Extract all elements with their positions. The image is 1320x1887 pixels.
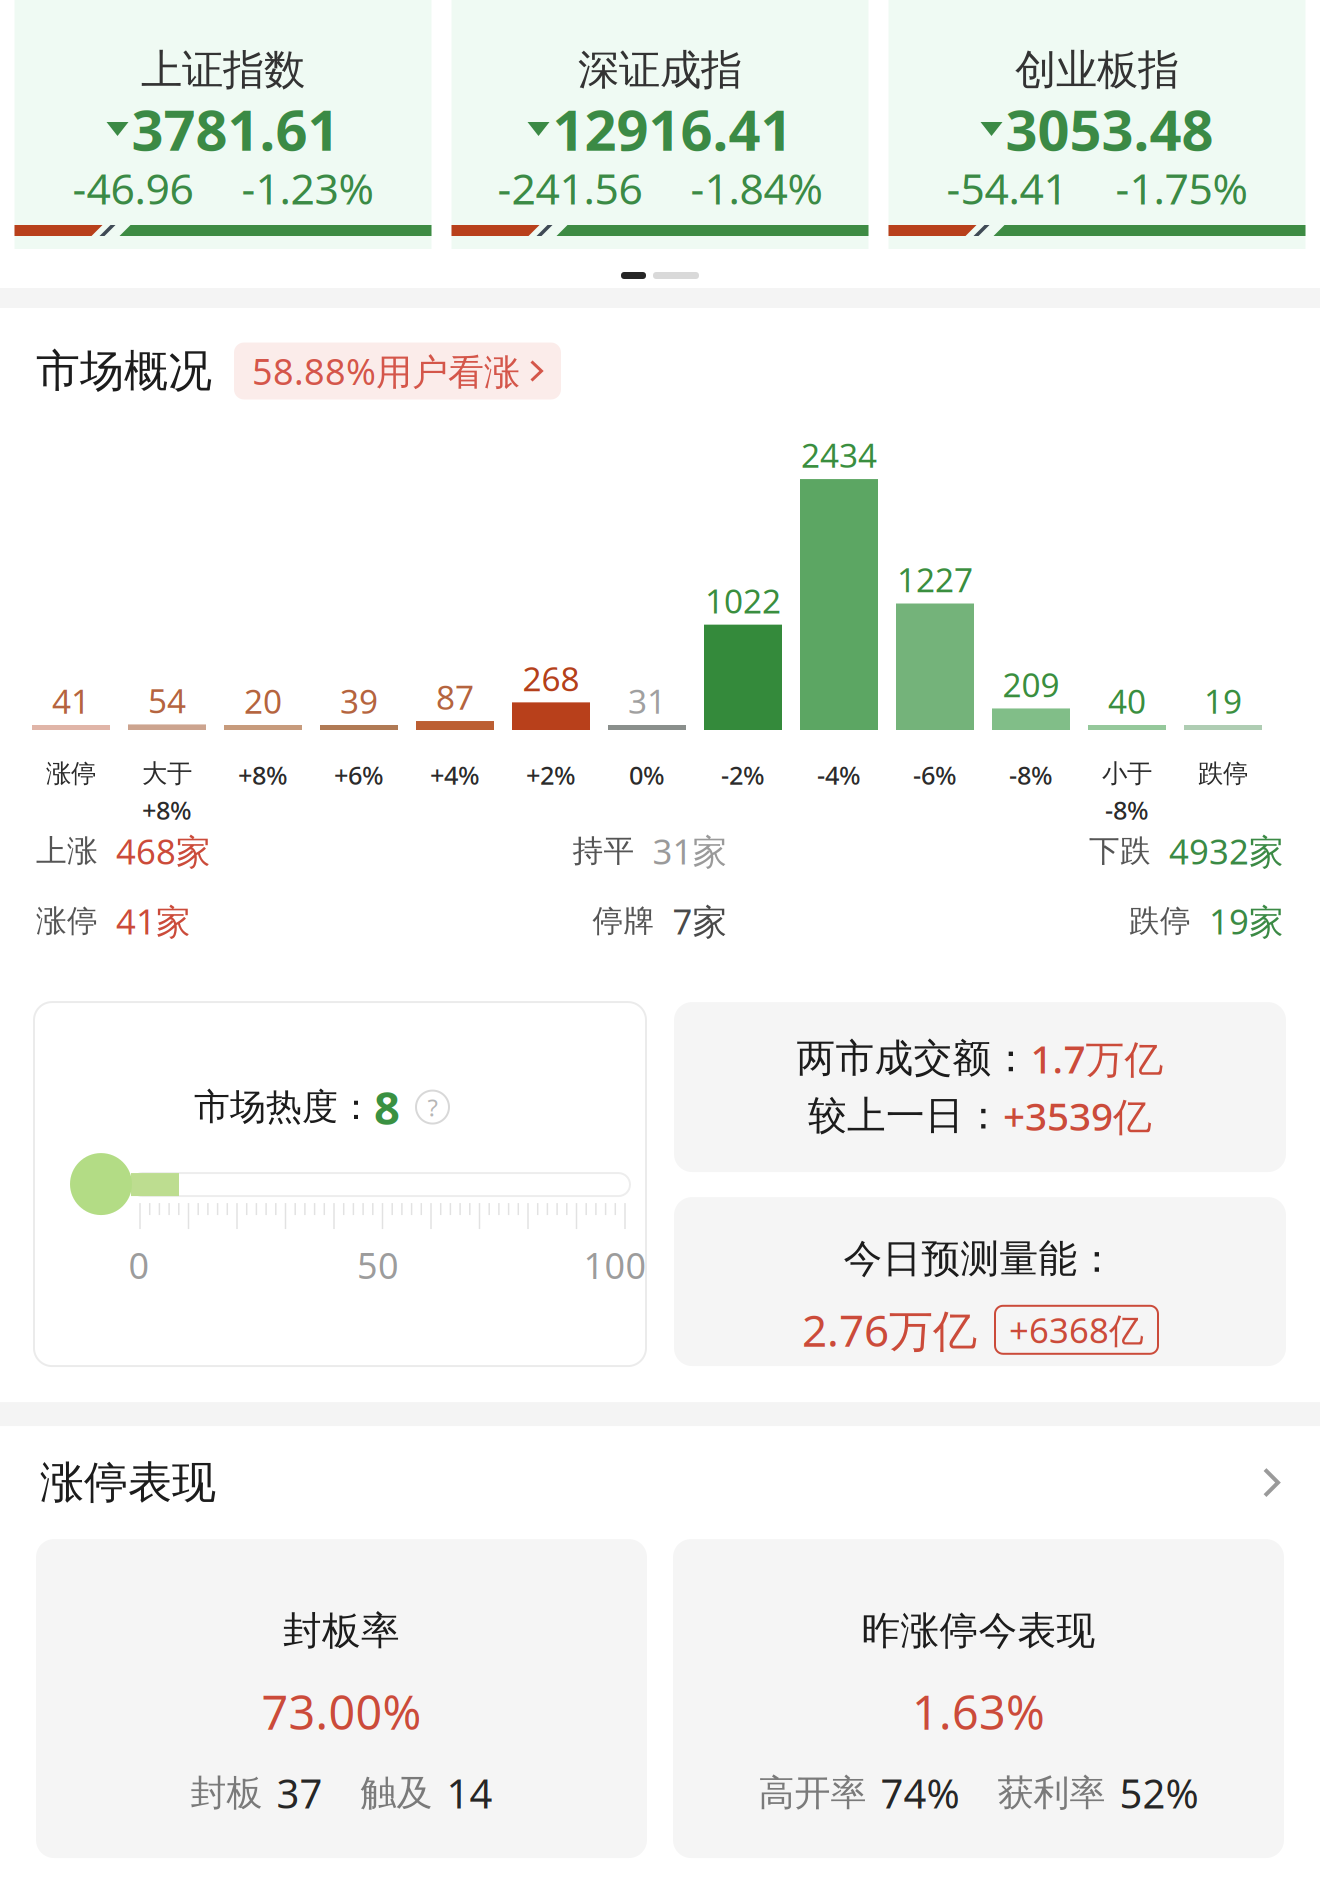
staticText: +6368亿 xyxy=(1009,1307,1144,1353)
staticText: -1.84% xyxy=(690,160,822,216)
staticText: 20 xyxy=(244,679,282,723)
staticText: 73.00% xyxy=(261,1681,421,1743)
staticText: 下跌 xyxy=(1089,832,1151,870)
staticText: 1.63% xyxy=(912,1681,1045,1743)
staticText: 触及 xyxy=(360,1771,432,1815)
staticText: 今日预测量能： xyxy=(843,1235,1116,1283)
staticText: 100 xyxy=(583,1241,646,1289)
staticText: 41 xyxy=(52,679,90,723)
button[interactable]: 涨停表现 xyxy=(0,1426,1320,1539)
staticText: +4% xyxy=(430,758,480,792)
staticText: +3539亿 xyxy=(1003,1090,1152,1141)
staticText: 创业板指 xyxy=(1015,45,1179,95)
staticText: 昨涨停今表现 xyxy=(861,1607,1095,1655)
staticText: 封板 xyxy=(190,1771,262,1815)
staticText: 268 xyxy=(522,656,579,700)
staticText: 3053.48 xyxy=(1005,92,1213,166)
staticText: 3781.61 xyxy=(131,92,339,166)
staticText: 涨停表现 xyxy=(40,1456,216,1510)
staticText: 39 xyxy=(340,679,378,723)
staticText: 封板率 xyxy=(283,1607,400,1655)
staticText: 41家 xyxy=(116,898,191,944)
staticText: 19 xyxy=(1204,679,1242,723)
staticText: -46.96 xyxy=(72,160,193,216)
staticText: -1.23% xyxy=(241,160,373,216)
staticText: 高开率 xyxy=(758,1771,866,1815)
staticText: 跌停 xyxy=(1198,758,1248,789)
staticText: 大于 xyxy=(142,758,192,789)
staticText: 58.88%用户看涨 xyxy=(252,347,520,395)
staticText: +2% xyxy=(526,758,576,792)
staticText: 涨停 xyxy=(46,758,96,789)
staticText: 上涨 xyxy=(36,832,98,870)
staticText: 1022 xyxy=(705,578,781,623)
staticText: 持平 xyxy=(572,832,634,870)
staticText: 209 xyxy=(1002,662,1059,706)
staticText: 0% xyxy=(629,758,665,792)
staticText: 31 xyxy=(628,679,666,723)
button[interactable]: 创业板指 xyxy=(888,0,1305,249)
staticText: 市场热度： xyxy=(194,1085,374,1129)
staticText: 40 xyxy=(1108,679,1146,723)
staticText: 74% xyxy=(880,1766,959,1820)
staticText: 7家 xyxy=(672,898,727,944)
staticText: 0 xyxy=(128,1241,149,1289)
staticText: 468家 xyxy=(116,828,211,874)
staticText: 市场概况 xyxy=(36,344,212,398)
staticText: +8% xyxy=(142,793,192,827)
staticText: 14 xyxy=(446,1766,492,1820)
button[interactable]: 58.88%用户看涨 xyxy=(234,342,561,399)
staticText: 获利率 xyxy=(997,1771,1105,1815)
staticText: -4% xyxy=(817,758,861,792)
staticText: -6% xyxy=(913,758,957,792)
staticText: 54 xyxy=(148,678,186,722)
staticText: -8% xyxy=(1009,758,1053,792)
staticText: 52% xyxy=(1119,1766,1198,1820)
staticText: 2.76万亿 xyxy=(802,1301,977,1359)
staticText: -54.41 xyxy=(946,160,1067,216)
staticText: 停牌 xyxy=(592,902,654,940)
staticText: ? xyxy=(427,1091,437,1123)
staticText: 较上一日： xyxy=(808,1092,1003,1139)
staticText: 涨停 xyxy=(36,902,98,940)
staticText: 19家 xyxy=(1209,898,1284,944)
button[interactable]: 上证指数 xyxy=(14,0,431,249)
staticText: 37 xyxy=(276,1766,322,1820)
staticText: +8% xyxy=(238,758,288,792)
staticText: -2% xyxy=(721,758,765,792)
staticText: 两市成交额： xyxy=(796,1035,1030,1082)
staticText: 87 xyxy=(436,675,474,719)
staticText: 2434 xyxy=(801,433,877,477)
staticText: 深证成指 xyxy=(578,45,742,95)
staticText: 1.7万亿 xyxy=(1030,1033,1163,1084)
staticText: 31家 xyxy=(652,828,727,874)
staticText: 4932家 xyxy=(1169,828,1284,874)
staticText: 上证指数 xyxy=(141,45,305,95)
staticText: 小于 xyxy=(1102,758,1152,789)
staticText: -241.56 xyxy=(497,160,642,216)
button[interactable]: 深证成指 xyxy=(451,0,868,249)
staticText: -8% xyxy=(1105,793,1149,827)
staticText: -1.75% xyxy=(1115,160,1247,216)
staticText: 1227 xyxy=(897,557,973,601)
staticText: 50 xyxy=(357,1241,399,1289)
staticText: 8 xyxy=(374,1077,400,1137)
staticText: 跌停 xyxy=(1129,902,1191,940)
staticText: 12916.41 xyxy=(552,92,792,166)
staticText: +6% xyxy=(334,758,384,792)
